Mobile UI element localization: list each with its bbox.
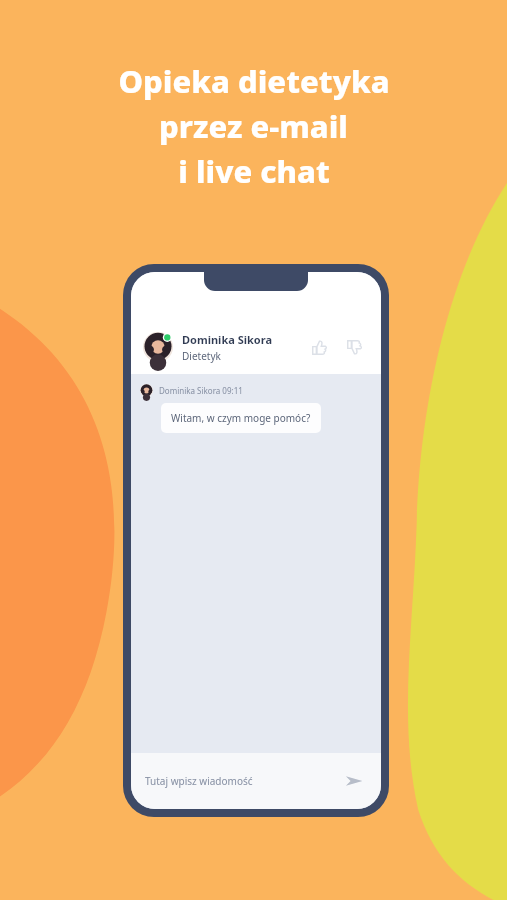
button[interactable]: Witam, w czym moge pomóc? bbox=[161, 403, 321, 433]
button[interactable]: Tutaj wpisz wiadomość bbox=[131, 753, 381, 809]
staticText: Witam, w czym moge pomóc? bbox=[171, 411, 311, 425]
button[interactable]: Dominika Sikora bbox=[131, 320, 381, 374]
button[interactable]: Thumbs down bbox=[339, 332, 369, 362]
staticText: Tutaj wpisz wiadomość bbox=[145, 774, 341, 788]
staticText: przez e-mail bbox=[159, 105, 348, 147]
staticText: Dietetyk bbox=[182, 349, 221, 363]
staticText: Dominika Sikora 09:11 bbox=[159, 385, 243, 396]
button[interactable]: Send bbox=[341, 768, 367, 794]
staticText: Dominika Sikora bbox=[182, 332, 272, 347]
button[interactable]: Thumbs up bbox=[304, 332, 334, 362]
staticText: Opieka dietetyka bbox=[118, 60, 390, 102]
staticText: i live chat bbox=[178, 150, 330, 192]
